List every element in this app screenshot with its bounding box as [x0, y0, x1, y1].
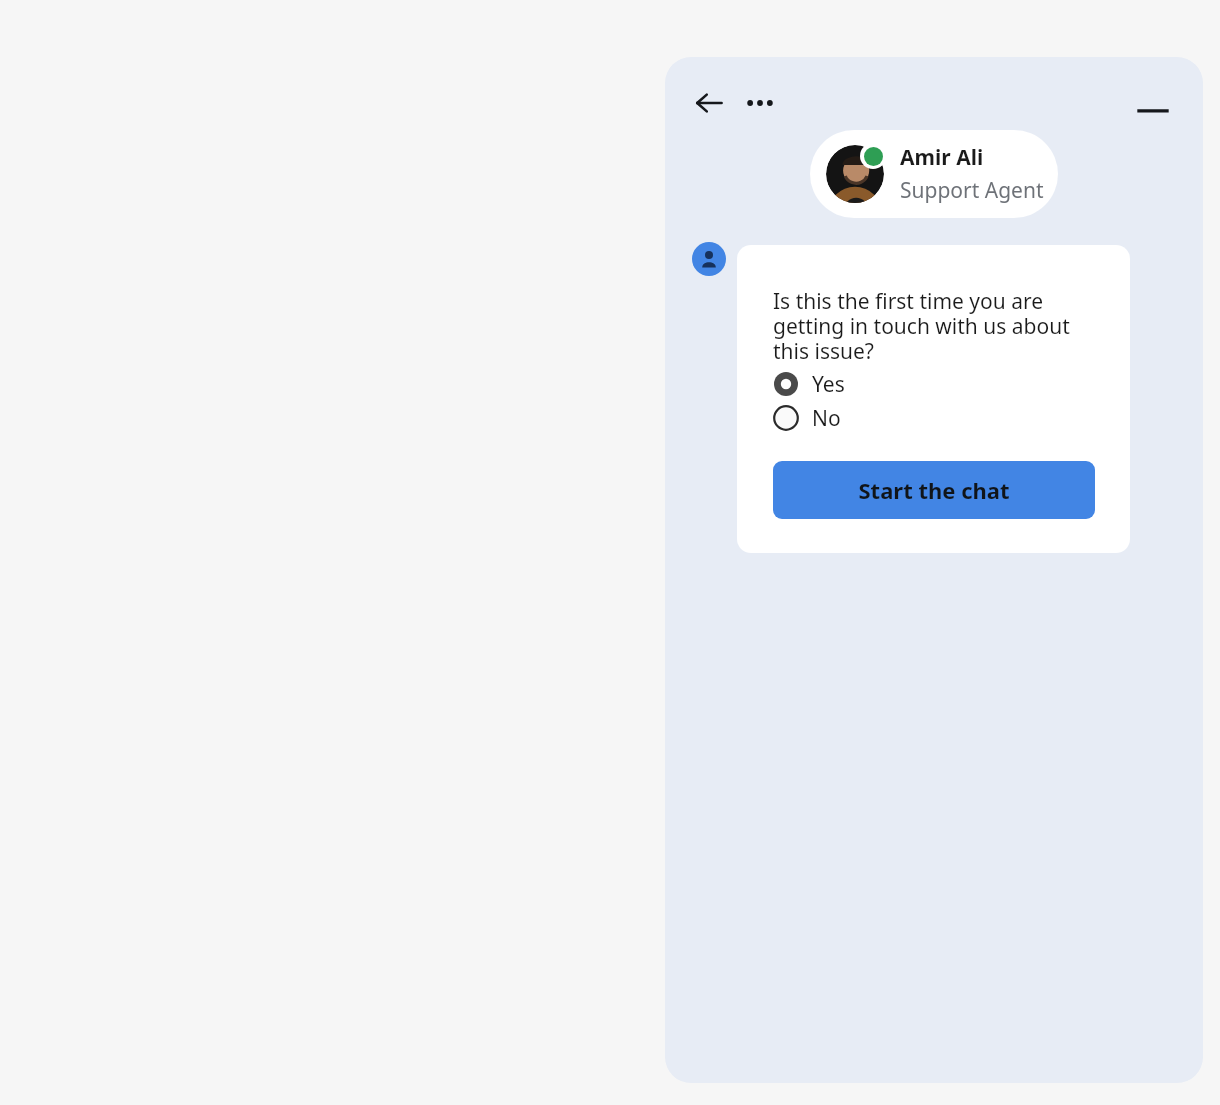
staticText: Amir Ali [900, 143, 984, 172]
button[interactable]: Yes [773, 367, 1100, 401]
button[interactable]: More options [736, 79, 784, 127]
button[interactable]: Back [685, 79, 733, 127]
staticText: No [812, 404, 841, 433]
staticText: Yes [812, 370, 845, 399]
staticText: Support Agent [900, 176, 1044, 205]
button[interactable]: Amir Ali [810, 130, 1058, 218]
button[interactable]: No [773, 401, 1100, 435]
staticText: Is this the first time you are getting i… [773, 287, 1100, 365]
button[interactable]: Start the chat [773, 461, 1095, 519]
button[interactable]: Minimize [1129, 83, 1177, 131]
staticText: Start the chat [858, 475, 1010, 505]
